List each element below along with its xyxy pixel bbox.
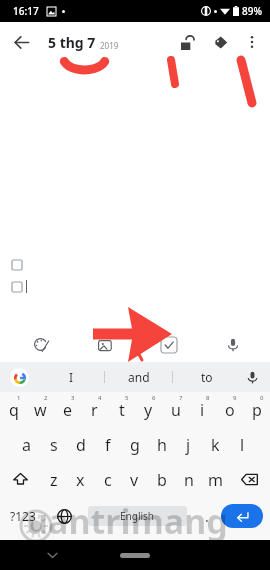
staticText: e — [63, 399, 73, 421]
button[interactable]: d — [67, 427, 94, 462]
button[interactable]: p — [243, 392, 270, 427]
staticText: q — [9, 399, 19, 421]
staticText: i — [200, 399, 205, 421]
staticText: 8 — [206, 394, 210, 402]
staticText: and — [128, 369, 150, 385]
button[interactable]: More options — [236, 26, 268, 58]
button[interactable]: s — [40, 427, 67, 462]
staticText: 4 — [98, 394, 102, 402]
staticText: a — [22, 434, 31, 456]
staticText: 1 — [17, 394, 21, 402]
button[interactable]: f — [94, 427, 121, 462]
staticText: z — [50, 469, 58, 491]
staticText: 2019 — [100, 40, 119, 51]
button[interactable]: j — [175, 427, 202, 462]
button[interactable]: Change language — [46, 497, 82, 535]
button[interactable]: Add image — [90, 330, 120, 360]
staticText: t — [119, 399, 125, 421]
staticText: o — [225, 399, 235, 421]
button[interactable]: a — [13, 427, 40, 462]
button[interactable]: Voice typing — [241, 366, 263, 388]
staticText: 9 — [233, 394, 237, 402]
staticText: k — [211, 434, 220, 456]
button[interactable] — [12, 260, 22, 270]
staticText: 89% — [242, 4, 262, 18]
staticText: 5 thg 7 — [48, 33, 96, 52]
button[interactable]: and — [105, 362, 172, 392]
staticText: b — [157, 469, 167, 491]
button[interactable]: Home — [120, 553, 150, 558]
button[interactable]: o — [216, 392, 243, 427]
button[interactable]: r — [81, 392, 108, 427]
staticText: r — [91, 399, 98, 421]
button[interactable]: Delete — [229, 462, 270, 497]
button[interactable]: Back — [4, 25, 38, 59]
button[interactable]: h — [148, 427, 175, 462]
staticText: p — [252, 399, 262, 421]
button[interactable]: e — [54, 392, 81, 427]
staticText: I — [69, 369, 74, 385]
staticText: c — [104, 469, 112, 491]
button[interactable]: v — [121, 462, 148, 497]
button[interactable]: k — [202, 427, 229, 462]
button[interactable]: m — [202, 462, 229, 497]
staticText: j — [186, 434, 191, 456]
button[interactable]: Shift — [0, 462, 40, 497]
button[interactable]: to — [173, 362, 240, 392]
staticText: l — [240, 434, 245, 456]
button[interactable]: z — [40, 462, 67, 497]
button[interactable]: Label — [204, 26, 236, 58]
staticText: h — [157, 434, 167, 456]
staticText: 5 — [125, 394, 129, 402]
button[interactable]: English — [88, 506, 187, 526]
staticText: u — [171, 399, 181, 421]
button[interactable]: . — [193, 497, 221, 535]
staticText: m — [208, 469, 223, 491]
button[interactable]: n — [175, 462, 202, 497]
button[interactable]: I — [38, 362, 104, 392]
button[interactable]: b — [148, 462, 175, 497]
staticText: g — [130, 434, 140, 456]
staticText: 7 — [179, 394, 183, 402]
button[interactable]: Lock note — [172, 26, 204, 58]
staticText: . — [205, 507, 209, 526]
button[interactable]: x — [67, 462, 94, 497]
staticText: f — [105, 434, 111, 456]
button[interactable] — [12, 282, 22, 292]
staticText: n — [184, 469, 194, 491]
button[interactable]: q — [0, 392, 27, 427]
button[interactable]: t — [108, 392, 135, 427]
staticText: to — [201, 369, 213, 385]
button[interactable]: w — [27, 392, 54, 427]
staticText: uantrimang — [26, 498, 228, 544]
staticText: s — [50, 434, 58, 456]
button[interactable]: l — [229, 427, 256, 462]
staticText: 6 — [152, 394, 156, 402]
button[interactable]: i — [189, 392, 216, 427]
staticText: 2 — [44, 394, 48, 402]
button[interactable]: ?123 — [0, 497, 46, 535]
button[interactable]: Voice input — [218, 330, 248, 360]
staticText: 16:17 — [13, 4, 39, 18]
staticText: ?123 — [10, 508, 36, 524]
staticText: d — [76, 434, 86, 456]
staticText: 0 — [260, 394, 264, 402]
button[interactable]: g — [121, 427, 148, 462]
staticText: x — [76, 469, 85, 491]
button[interactable]: Change colour — [26, 330, 56, 360]
staticText: w — [34, 399, 47, 421]
button[interactable]: y — [135, 392, 162, 427]
button[interactable]: Google — [10, 368, 29, 387]
staticText: y — [144, 399, 153, 421]
button[interactable]: Checkboxes — [154, 330, 184, 360]
button[interactable]: c — [94, 462, 121, 497]
button[interactable]: Enter — [221, 504, 263, 528]
staticText: 3 — [71, 394, 75, 402]
staticText: English — [120, 509, 155, 523]
staticText: v — [130, 469, 139, 491]
button[interactable]: u — [162, 392, 189, 427]
